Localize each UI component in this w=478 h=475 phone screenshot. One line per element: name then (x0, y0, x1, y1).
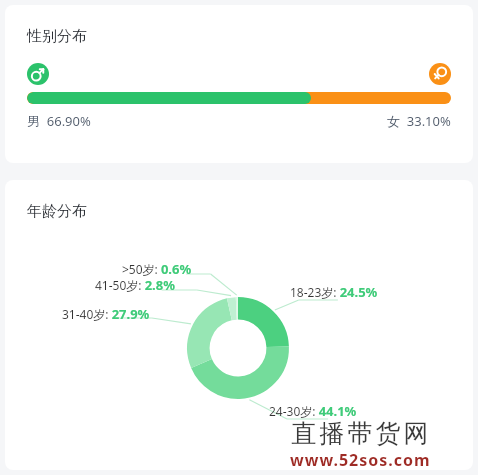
staticText: >50岁: 0.6% (122, 260, 192, 278)
staticText: 女 33.10% (387, 112, 451, 130)
staticText: 年龄分布 (27, 202, 87, 221)
staticText: www.52sos.com (290, 449, 431, 470)
staticText: 24-30岁: 44.1% (269, 402, 357, 420)
other: Male (27, 63, 49, 85)
staticText: 男 66.90% (27, 112, 91, 130)
staticText: 18-23岁: 24.5% (290, 283, 378, 301)
staticText: 31-40岁: 27.9% (62, 305, 150, 323)
staticText: 性别分布 (27, 27, 87, 46)
staticText: 直播带货网 (290, 418, 430, 449)
button[interactable]: 年龄分布 (5, 180, 473, 470)
other: Female (429, 63, 451, 85)
staticText: 41-50岁: 2.8% (95, 276, 175, 294)
button[interactable]: 性别分布 (5, 5, 473, 163)
